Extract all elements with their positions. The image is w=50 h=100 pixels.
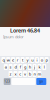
staticText: 123 — [4, 80, 10, 83]
staticText: c — [19, 71, 21, 77]
staticText: i — [36, 57, 37, 63]
staticText: b — [29, 71, 31, 77]
staticText: s — [10, 64, 12, 70]
staticText: r — [17, 57, 19, 63]
staticText: o — [41, 57, 43, 63]
staticText: t — [22, 57, 23, 63]
staticText: e — [12, 57, 14, 63]
staticText: Ipsum dolor — [3, 34, 24, 39]
staticText: j — [34, 64, 35, 70]
staticText: u — [31, 57, 33, 63]
staticText: z — [10, 71, 12, 77]
staticText: d — [14, 64, 16, 70]
staticText: a — [5, 64, 7, 70]
staticText: p — [46, 57, 48, 63]
staticText: Lorem 46,84 — [10, 27, 40, 34]
staticText: g — [24, 64, 26, 70]
staticText: k — [38, 64, 40, 70]
staticText: f — [20, 64, 21, 70]
staticText: n — [34, 71, 36, 77]
staticText: l — [44, 64, 45, 70]
staticText: v — [24, 71, 26, 77]
staticText: x — [14, 71, 16, 77]
staticText: h — [29, 64, 31, 70]
staticText: w — [7, 57, 10, 63]
staticText: m — [37, 71, 41, 77]
staticText: go — [39, 80, 43, 83]
staticText: q — [2, 57, 4, 63]
staticText: y — [26, 57, 28, 63]
